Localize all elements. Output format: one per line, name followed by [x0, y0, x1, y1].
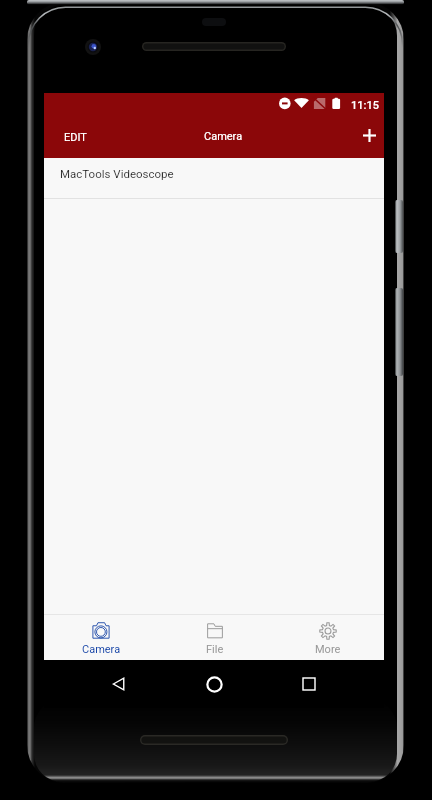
staticText: EDIT	[64, 131, 87, 144]
button[interactable]: EDIT	[44, 120, 107, 155]
staticText: Camera	[204, 130, 243, 143]
staticText: MacTools Videoscope	[60, 167, 174, 180]
button[interactable]: More	[271, 615, 384, 660]
button[interactable]: Add	[351, 118, 384, 153]
button[interactable]: Back	[99, 664, 139, 704]
staticText: More	[315, 643, 341, 656]
button[interactable]: Home	[194, 664, 234, 704]
staticText: Camera	[82, 643, 121, 656]
staticText: File	[206, 643, 224, 656]
staticText: 11:15	[351, 99, 379, 112]
button[interactable]: Recents	[289, 664, 329, 704]
button[interactable]: MacTools Videoscope	[44, 158, 384, 198]
button[interactable]: Camera	[44, 615, 158, 660]
button[interactable]: File	[158, 615, 271, 660]
